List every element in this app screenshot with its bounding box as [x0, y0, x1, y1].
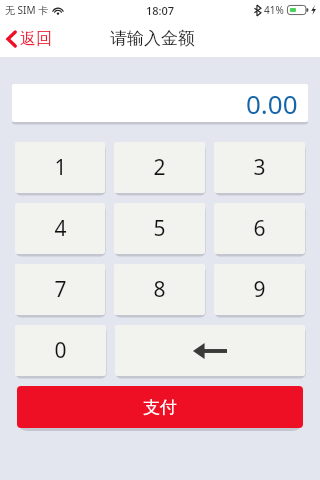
staticText: 8 — [153, 275, 166, 304]
button[interactable]: 9 — [214, 264, 305, 315]
staticText: 无 SIM 卡 — [5, 3, 49, 17]
staticText: 1 — [54, 153, 67, 182]
staticText: 18:07 — [146, 3, 175, 18]
staticText: 41% — [264, 3, 284, 17]
staticText: 4 — [54, 214, 67, 243]
button[interactable]: 0.00 — [12, 84, 308, 122]
staticText: 返回 — [20, 29, 52, 49]
button[interactable]: 返回 — [0, 23, 62, 55]
button[interactable]: 7 — [15, 264, 105, 315]
button[interactable]: 1 — [15, 142, 105, 193]
button[interactable]: 8 — [114, 264, 205, 315]
staticText: 5 — [153, 214, 166, 243]
staticText: 2 — [153, 153, 166, 182]
staticText: 0.00 — [246, 86, 298, 121]
staticText: 0 — [54, 336, 67, 365]
staticText: 3 — [253, 153, 266, 182]
staticText: 6 — [253, 214, 266, 243]
button[interactable]: 5 — [114, 203, 205, 254]
button[interactable]: 支付 — [17, 386, 303, 428]
button[interactable]: 0 — [15, 325, 106, 376]
button[interactable]: 4 — [15, 203, 105, 254]
staticText: 请输入金额 — [110, 28, 195, 49]
staticText: 7 — [54, 275, 67, 304]
staticText: 9 — [253, 275, 266, 304]
button[interactable]: 2 — [114, 142, 205, 193]
staticText: 支付 — [143, 397, 177, 418]
button[interactable]: Backspace — [115, 325, 305, 376]
button[interactable]: 3 — [214, 142, 305, 193]
button[interactable]: 6 — [214, 203, 305, 254]
